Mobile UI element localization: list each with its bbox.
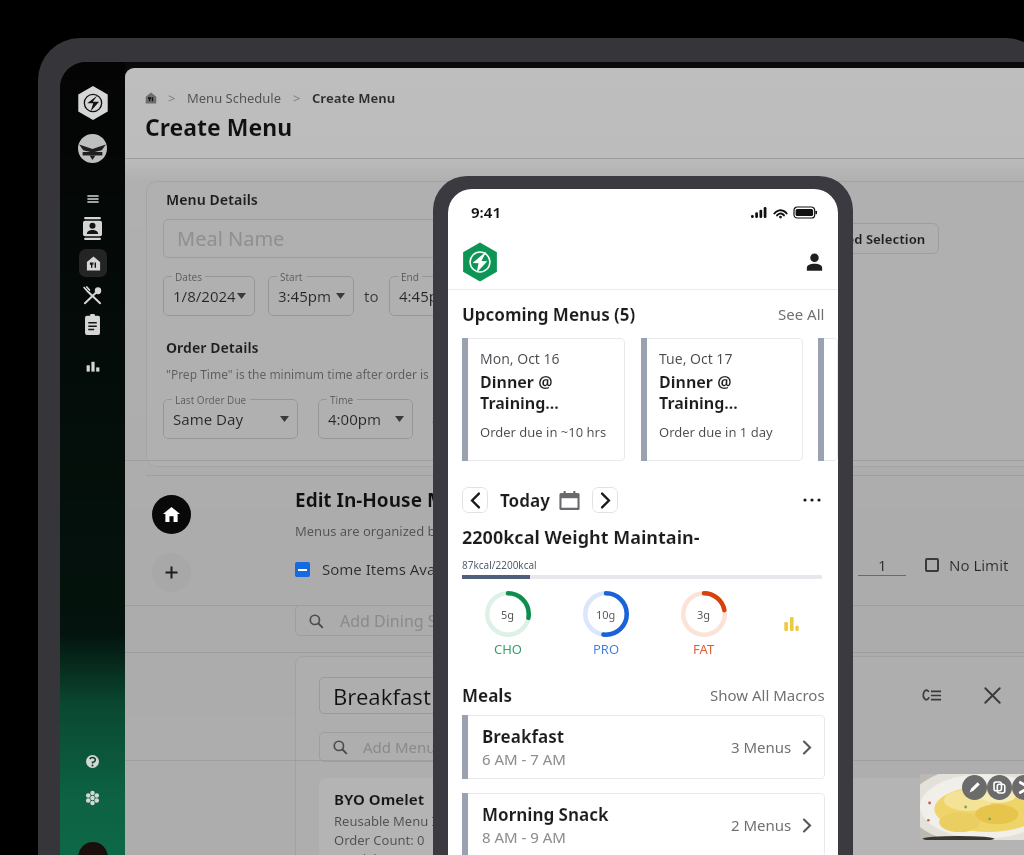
button[interactable]: Add Dining Station bbox=[295, 605, 625, 636]
staticText: > bbox=[293, 89, 301, 107]
staticText: Edit In-House Menus bbox=[295, 487, 491, 513]
staticText: 1/8/2024 bbox=[173, 286, 236, 306]
button[interactable]: Open bbox=[1012, 775, 1024, 800]
button[interactable]: Home bbox=[152, 495, 191, 534]
button[interactable]: See All bbox=[778, 304, 825, 324]
staticText: Dates bbox=[175, 270, 202, 284]
staticText: > bbox=[168, 89, 176, 107]
button[interactable]: Contacts bbox=[77, 211, 108, 246]
button[interactable]: Show All Macros bbox=[710, 685, 825, 705]
button[interactable]: 4:00pm bbox=[318, 399, 413, 439]
button[interactable]: Recipes bbox=[77, 281, 108, 310]
staticText: Meal Name bbox=[177, 225, 285, 252]
button[interactable]: Apps bbox=[79, 785, 106, 811]
button[interactable]: Menu bbox=[80, 187, 106, 211]
staticText: 4:00pm bbox=[328, 409, 382, 429]
staticText: See All bbox=[778, 304, 825, 324]
staticText: 5g bbox=[501, 607, 515, 622]
staticText: 4:45pm bbox=[399, 286, 453, 306]
button[interactable]: Mon, Oct 16 bbox=[462, 338, 625, 461]
staticText: Create Menu bbox=[145, 111, 293, 142]
staticText: End bbox=[401, 270, 419, 284]
staticText: Menu Details bbox=[166, 190, 258, 209]
staticText: Breakfast Station bbox=[333, 681, 510, 711]
button[interactable]: 4:45pm bbox=[389, 276, 477, 316]
button[interactable]: Add Menu Item bbox=[319, 732, 619, 762]
staticText: 9:41 bbox=[471, 202, 501, 222]
button[interactable]: Add bbox=[152, 553, 191, 592]
staticText: Mon, Oct 16 bbox=[480, 349, 560, 368]
staticText: Morning Snack bbox=[482, 803, 609, 826]
staticText: Create Menu bbox=[312, 89, 396, 107]
button[interactable]: Edit bbox=[962, 775, 987, 800]
staticText: No Limit bbox=[949, 555, 1009, 575]
staticText: BYO Omelet bbox=[334, 789, 425, 809]
staticText: Advanced Selection bbox=[799, 230, 926, 248]
staticText: PRO bbox=[593, 640, 620, 658]
staticText: 3 Menus bbox=[731, 737, 792, 757]
button[interactable]: Reports bbox=[79, 353, 107, 379]
button[interactable]: CHO bbox=[485, 591, 531, 637]
button[interactable]: Macro chart bbox=[784, 617, 799, 631]
button[interactable]: Same Day bbox=[163, 399, 298, 439]
button[interactable]: Close bbox=[980, 684, 1004, 706]
staticText: "Prep Time" is the minimum time after or… bbox=[166, 366, 692, 382]
staticText: Today bbox=[500, 489, 550, 512]
button[interactable]: Previous day bbox=[462, 487, 488, 513]
staticText: Order due in ~10 hrs bbox=[480, 423, 607, 441]
button[interactable]: Sort bbox=[920, 684, 944, 706]
button[interactable]: Profile bbox=[78, 842, 108, 855]
button[interactable]: 1/8/2024 bbox=[163, 276, 255, 316]
staticText: Breakfast bbox=[482, 725, 565, 748]
staticText: 2200kcal Weight Maintain- bbox=[462, 525, 700, 550]
button[interactable]: App logo bbox=[76, 86, 110, 120]
staticText: Order Details bbox=[166, 338, 259, 357]
staticText: 6 AM - 7 AM bbox=[482, 749, 566, 769]
button[interactable]: Duplicate bbox=[987, 775, 1012, 800]
button[interactable]: Account bbox=[799, 247, 829, 277]
button[interactable]: PRO bbox=[583, 591, 629, 637]
staticText: 1 bbox=[878, 555, 887, 575]
button[interactable]: More options bbox=[799, 487, 825, 513]
button[interactable]: 3:45pm bbox=[268, 276, 354, 316]
staticText: Menu Schedule bbox=[187, 89, 282, 107]
staticText: Last Order Due bbox=[175, 393, 247, 407]
button[interactable]: Breakfast bbox=[462, 715, 825, 779]
staticText: Meals bbox=[462, 684, 512, 707]
staticText: Reusable Menu Item bbox=[334, 812, 461, 830]
staticText: 2 Menus bbox=[731, 815, 792, 835]
staticText: Order Count: 0 bbox=[334, 831, 425, 849]
button[interactable]: Team bbox=[78, 134, 107, 163]
staticText: Same Day bbox=[173, 409, 244, 429]
staticText: FAT bbox=[693, 640, 715, 658]
staticText: Add Dining Station bbox=[340, 610, 481, 632]
button[interactable]: Home bbox=[460, 242, 500, 282]
staticText: 8 AM - 9 AM bbox=[482, 827, 566, 847]
button[interactable]: Morning Snack bbox=[462, 793, 825, 855]
staticText: Upcoming Menus (5) bbox=[462, 303, 636, 326]
staticText: 3g bbox=[697, 607, 711, 622]
staticText: 3:45pm bbox=[278, 286, 332, 306]
staticText: CHO bbox=[494, 640, 523, 658]
staticText: Show All Macros bbox=[710, 685, 825, 705]
staticText: 10g bbox=[596, 607, 616, 622]
button[interactable]: Dining bbox=[79, 249, 107, 277]
staticText: Start bbox=[280, 270, 303, 284]
button[interactable]: No Limit bbox=[925, 555, 1009, 575]
staticText: 87kcal/2200kcal bbox=[462, 558, 537, 572]
staticText: to bbox=[364, 286, 379, 306]
staticText: Dinner @ Training... bbox=[480, 371, 559, 414]
staticText: Dinner @ Training... bbox=[659, 371, 738, 414]
staticText: Tue, Oct 17 bbox=[659, 349, 733, 368]
staticText: Add Menu Item bbox=[363, 737, 473, 757]
button[interactable]: Next day bbox=[592, 487, 618, 513]
button[interactable]: Help bbox=[80, 749, 105, 774]
button[interactable]: Breakfast Station bbox=[319, 677, 669, 714]
button[interactable]: FAT bbox=[681, 591, 727, 637]
staticText: Some Items Available In All Stations bbox=[322, 559, 574, 579]
button[interactable]: Tue, Oct 17 bbox=[641, 338, 803, 461]
staticText: Menus are organized by Dining Station bbox=[295, 522, 532, 540]
staticText: Special Requests Disabled bbox=[334, 850, 493, 855]
staticText: Time bbox=[330, 393, 354, 407]
button[interactable]: Orders bbox=[78, 308, 107, 341]
